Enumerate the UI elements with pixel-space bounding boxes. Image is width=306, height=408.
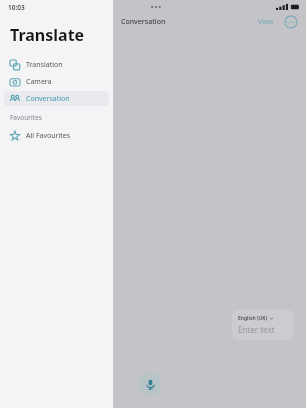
button[interactable]: English (UK) bbox=[232, 310, 294, 340]
button[interactable]: Camera bbox=[4, 74, 109, 89]
button[interactable]: Start speaking bbox=[138, 372, 162, 396]
staticText: All Favourites bbox=[26, 131, 71, 141]
button[interactable]: Conversation bbox=[4, 91, 109, 106]
staticText: Camera bbox=[26, 77, 52, 87]
staticText: English (UK) bbox=[238, 315, 268, 322]
button[interactable]: All Favourites bbox=[4, 128, 109, 143]
staticText: Enter text bbox=[238, 324, 275, 335]
staticText: View bbox=[258, 17, 274, 27]
staticText: Conversation bbox=[26, 94, 70, 104]
staticText: Conversation bbox=[121, 17, 166, 27]
button[interactable]: More options bbox=[284, 15, 298, 29]
staticText: Translation bbox=[26, 60, 63, 70]
button[interactable]: View bbox=[255, 15, 277, 29]
button[interactable]: Translation bbox=[4, 57, 109, 72]
staticText: Translate bbox=[10, 24, 85, 46]
staticText: 10:03 bbox=[8, 3, 25, 12]
staticText: Favourites bbox=[10, 113, 42, 122]
